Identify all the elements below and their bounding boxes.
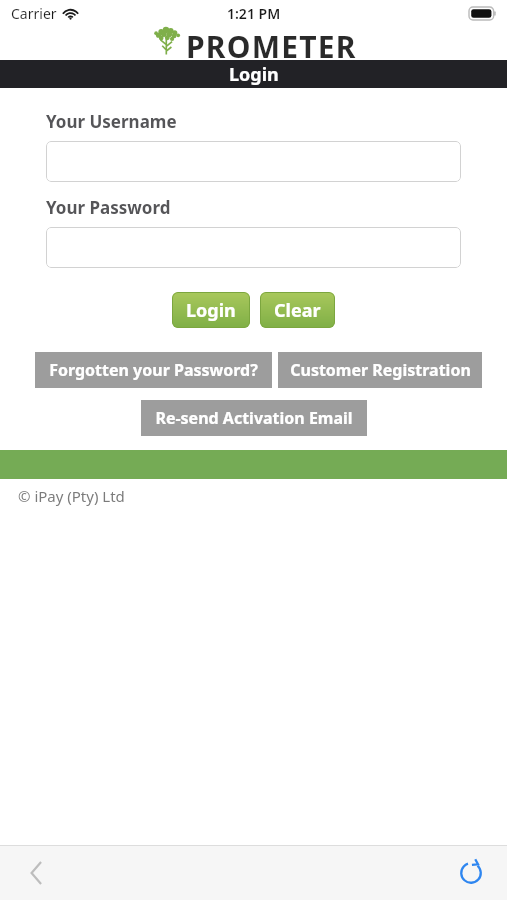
staticText: Login — [229, 62, 279, 87]
button[interactable]: Forgotten your Password? — [35, 352, 272, 388]
staticText: Carrier — [11, 4, 57, 23]
staticText: Re-send Activation Email — [155, 407, 353, 429]
button[interactable]: Back — [14, 851, 58, 895]
staticText: Customer Registration — [290, 359, 471, 381]
staticText: Forgotten your Password? — [49, 359, 258, 381]
staticText: 1:21 PM — [227, 4, 281, 23]
staticText: Your Username — [46, 110, 177, 133]
button[interactable] — [46, 227, 461, 268]
staticText: Login — [186, 298, 236, 323]
button[interactable]: Clear — [260, 292, 335, 328]
button[interactable]: Customer Registration — [278, 352, 482, 388]
button[interactable]: Login — [172, 292, 250, 328]
staticText: PROMETER — [186, 26, 357, 60]
staticText: © iPay (Pty) Ltd — [18, 486, 125, 506]
button[interactable]: Reload — [449, 851, 493, 895]
staticText: Your Password — [46, 196, 171, 219]
staticText: Clear — [274, 298, 321, 323]
button[interactable]: Re-send Activation Email — [141, 400, 367, 436]
button[interactable] — [46, 141, 461, 182]
